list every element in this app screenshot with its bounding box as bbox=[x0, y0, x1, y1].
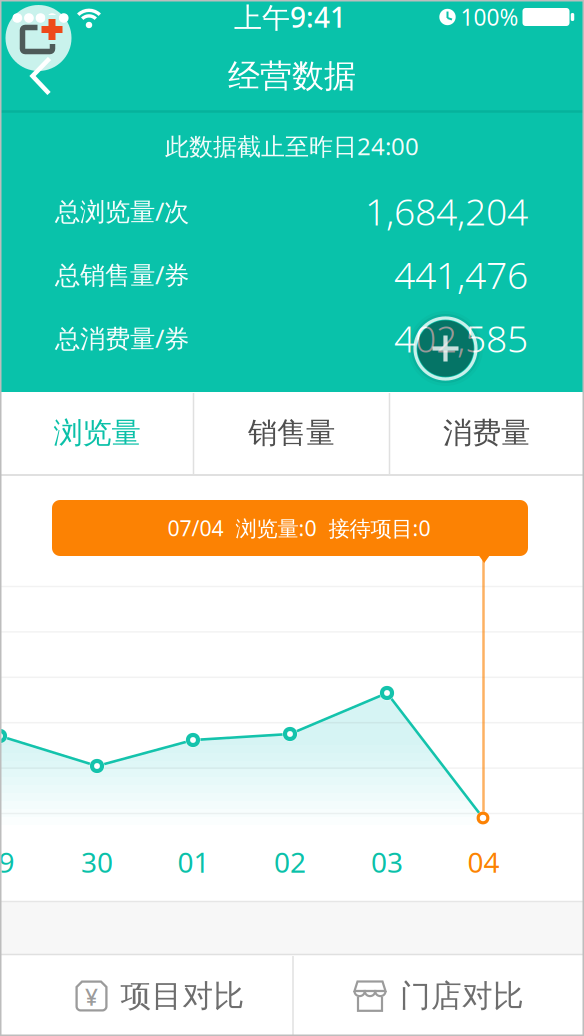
staticText: 02 bbox=[274, 843, 306, 881]
button[interactable]: 浏览量 bbox=[2, 393, 192, 473]
button[interactable] bbox=[19, 54, 63, 98]
staticText: 100% bbox=[460, 2, 518, 32]
staticText: 总浏览量/次 bbox=[55, 194, 189, 228]
staticText: 销售量 bbox=[248, 415, 335, 451]
staticText: 03 bbox=[371, 843, 403, 881]
staticText: 总销售量/券 bbox=[55, 258, 189, 291]
staticText: 门店对比 bbox=[400, 977, 524, 1015]
staticText: 经营数据 bbox=[228, 56, 356, 96]
staticText: 9 bbox=[0, 843, 14, 881]
staticText: 此数据截止至昨日24:00 bbox=[165, 130, 419, 162]
button[interactable] bbox=[407, 310, 483, 386]
staticText: 30 bbox=[81, 843, 113, 881]
staticText: 402,585 bbox=[394, 313, 528, 363]
staticText: 07/04 浏览量:0 接待项目:0 bbox=[167, 514, 430, 542]
button[interactable]: 消费量 bbox=[391, 393, 581, 473]
staticText: 浏览量 bbox=[53, 415, 140, 451]
staticText: 总消费量/券 bbox=[55, 321, 189, 355]
button[interactable] bbox=[0, 0, 76, 76]
button[interactable]: 07/04 浏览量:0 接待项目:0 bbox=[52, 500, 528, 556]
staticText: 01 bbox=[177, 843, 209, 881]
staticText: 上午9:41 bbox=[234, 0, 346, 36]
staticText: 04 bbox=[467, 843, 499, 881]
button[interactable]: 销售量 bbox=[196, 393, 386, 473]
button[interactable]: 门店对比 bbox=[298, 957, 578, 1035]
button[interactable]: ¥ bbox=[20, 957, 300, 1035]
staticText: 项目对比 bbox=[120, 977, 244, 1015]
staticText: 消费量 bbox=[443, 415, 530, 451]
staticText: 1,684,204 bbox=[365, 186, 528, 236]
staticText: ¥ bbox=[85, 982, 98, 1012]
staticText: 441,476 bbox=[394, 250, 528, 299]
